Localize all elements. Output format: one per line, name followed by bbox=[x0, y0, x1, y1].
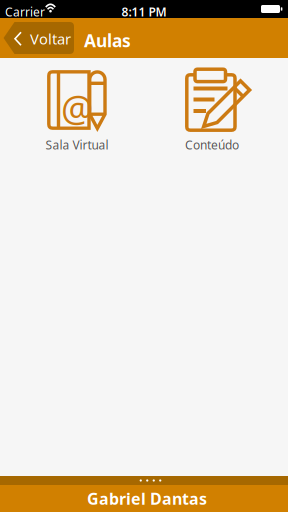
staticText: Gabriel Dantas bbox=[87, 488, 207, 509]
staticText: Sala Virtual bbox=[45, 137, 108, 153]
button[interactable]: Conteúdo bbox=[158, 66, 276, 158]
button[interactable]: @ bbox=[18, 66, 136, 158]
button[interactable]: Voltar bbox=[3, 22, 74, 54]
staticText: 8:11 PM bbox=[121, 4, 166, 20]
staticText: Conteúdo bbox=[185, 137, 239, 153]
staticText: @ bbox=[61, 84, 93, 132]
staticText: Voltar bbox=[30, 29, 71, 48]
staticText: Aulas bbox=[84, 29, 131, 52]
staticText: Carrier bbox=[5, 4, 45, 20]
button[interactable]: Gabriel Dantas bbox=[0, 485, 288, 512]
